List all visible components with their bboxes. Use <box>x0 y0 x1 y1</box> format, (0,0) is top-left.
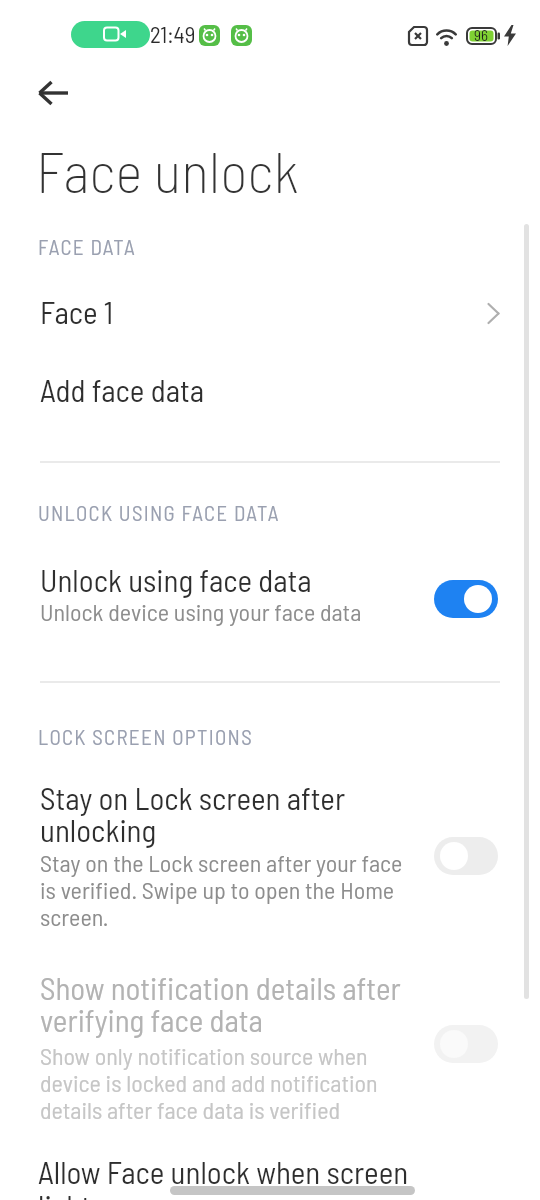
staticText: unlocking <box>40 811 157 848</box>
staticText: 96 <box>474 26 488 44</box>
staticText: Face unlock <box>36 135 299 205</box>
button[interactable]: Allow Face unlock when screen <box>0 1150 540 1200</box>
button[interactable]: Face 1 <box>0 283 540 345</box>
staticText: LOCK SCREEN OPTIONS <box>38 724 254 749</box>
staticText: details after face data is verified <box>40 1095 341 1124</box>
staticText: FACE DATA <box>38 234 137 259</box>
staticText: Unlock device using your face data <box>40 597 362 626</box>
staticText: Show notification details after <box>40 969 401 1006</box>
staticText: verifying face data <box>40 1001 263 1038</box>
staticText: screen. <box>40 902 109 931</box>
staticText: Face 1 <box>40 293 114 330</box>
button[interactable] <box>434 837 498 875</box>
staticText: 21:49 <box>150 20 196 48</box>
staticText: Allow Face unlock when screen <box>38 1153 409 1190</box>
staticText: lights up <box>38 1187 141 1200</box>
staticText: device is locked and add notification <box>40 1068 378 1097</box>
button[interactable] <box>434 580 498 618</box>
staticText: is verified. Swipe up to open the Home <box>40 875 395 904</box>
button[interactable]: Show notification details after <box>0 964 540 1132</box>
button[interactable]: Stay on Lock screen after <box>0 776 540 936</box>
staticText: Add face data <box>40 371 204 408</box>
staticText: Stay on the Lock screen after your face <box>40 848 403 877</box>
button[interactable] <box>24 70 80 116</box>
button[interactable]: Unlock using face data <box>0 556 540 642</box>
staticText: Show only notification source when <box>40 1041 368 1070</box>
staticText: Unlock using face data <box>40 561 312 598</box>
staticText: Stay on Lock screen after <box>40 779 346 816</box>
button[interactable] <box>434 1025 498 1063</box>
button[interactable]: Add face data <box>0 361 540 423</box>
staticText: UNLOCK USING FACE DATA <box>38 500 280 525</box>
